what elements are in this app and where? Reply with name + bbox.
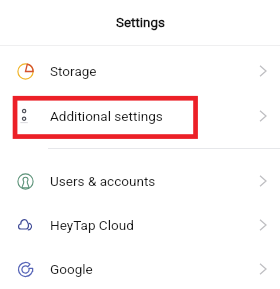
staticText: Additional settings: [50, 108, 163, 124]
button[interactable]: Users & accounts: [0, 159, 280, 203]
button[interactable]: Google: [0, 247, 280, 289]
button[interactable]: Storage: [0, 49, 280, 93]
staticText: Settings: [116, 15, 165, 31]
staticText: HeyTap Cloud: [50, 217, 134, 233]
button[interactable]: Settings: [0, 0, 280, 45]
staticText: Google: [50, 261, 93, 277]
button[interactable]: HeyTap Cloud: [0, 203, 280, 247]
staticText: Storage: [50, 63, 97, 79]
button[interactable]: Additional settings: [0, 94, 280, 138]
staticText: Users & accounts: [50, 173, 156, 189]
